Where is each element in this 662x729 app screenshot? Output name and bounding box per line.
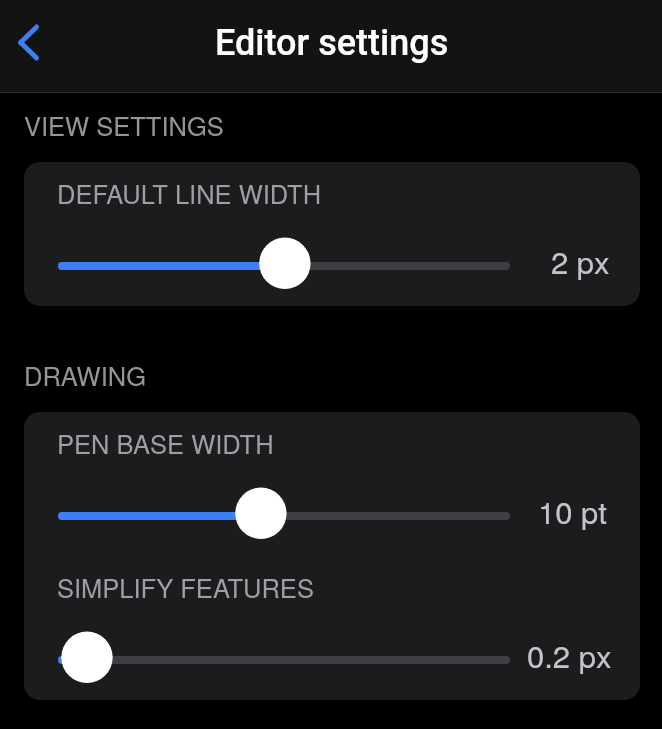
staticText: 2 px: [551, 238, 610, 282]
staticText: DEFAULT LINE WIDTH: [57, 175, 322, 212]
staticText: 0.2 px: [527, 632, 612, 676]
button[interactable]: Slider: [24, 240, 640, 292]
button[interactable]: Back: [0, 0, 60, 93]
button[interactable]: Slider: [24, 634, 640, 686]
button[interactable]: Slider: [24, 490, 640, 542]
staticText: VIEW SETTINGS: [24, 107, 224, 144]
staticText: 10 pt: [538, 488, 607, 532]
staticText: Editor settings: [215, 22, 449, 64]
staticText: DRAWING: [24, 357, 146, 394]
staticText: SIMPLIFY FEATURES: [57, 569, 314, 606]
staticText: PEN BASE WIDTH: [57, 425, 274, 462]
